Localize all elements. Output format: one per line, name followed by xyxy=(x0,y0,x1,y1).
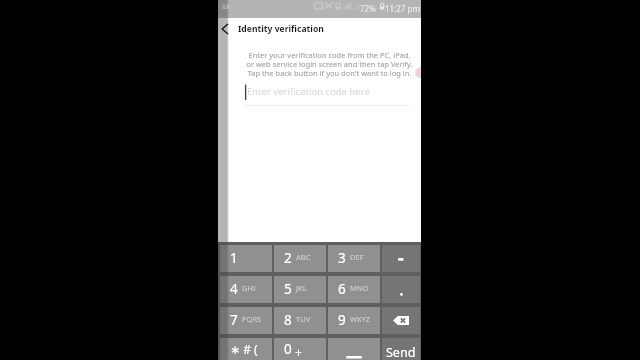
staticText: PQRS xyxy=(242,314,262,324)
staticText: 8 xyxy=(284,311,292,329)
staticText: 72% xyxy=(360,3,376,14)
staticText: + xyxy=(295,344,302,360)
staticText: JKL xyxy=(296,283,307,293)
staticText: Enter your verification code from the PC… xyxy=(238,50,421,78)
staticText: Enter verification code here xyxy=(247,85,370,98)
staticText: ABC xyxy=(296,252,311,262)
staticText: 1 xyxy=(230,249,238,267)
staticText: DEF xyxy=(350,252,364,262)
button[interactable]: 3 xyxy=(328,245,380,272)
staticText: 7 xyxy=(230,311,238,329)
button[interactable]: 0 xyxy=(274,338,326,360)
button[interactable]: 4 xyxy=(220,276,272,303)
staticText: 6 xyxy=(338,280,346,298)
button[interactable]: 6 xyxy=(328,276,380,303)
staticText: ∗ # ( xyxy=(230,341,258,357)
button[interactable]: 9 xyxy=(328,307,380,334)
button[interactable]: 7 xyxy=(220,307,272,334)
staticText: 3 xyxy=(338,249,346,267)
button[interactable]: Delete xyxy=(382,307,420,334)
staticText: Send xyxy=(386,344,416,360)
staticText: WXYZ xyxy=(350,314,371,324)
staticText: 5 xyxy=(284,280,292,298)
staticText: Identity verification xyxy=(238,23,324,35)
staticText: MNO xyxy=(350,283,369,293)
button[interactable] xyxy=(382,245,420,272)
button[interactable] xyxy=(382,276,420,303)
staticText: 0 xyxy=(284,340,292,358)
staticText: 2 xyxy=(284,249,292,267)
button[interactable]: 1 xyxy=(220,245,272,272)
staticText: 4 xyxy=(230,280,238,298)
button[interactable]: Enter verification code here xyxy=(245,87,410,107)
button[interactable]: ∗ # ( xyxy=(220,338,272,360)
staticText: 11:27 pm xyxy=(385,3,420,14)
button[interactable]: 5 xyxy=(274,276,326,303)
staticText: GHI xyxy=(242,283,256,293)
button[interactable]: Send xyxy=(382,338,420,360)
staticText: TUV xyxy=(296,314,311,324)
button[interactable]: Back xyxy=(219,20,233,38)
button[interactable]: 8 xyxy=(274,307,326,334)
staticText: 9 xyxy=(338,311,346,329)
button[interactable]: 2 xyxy=(274,245,326,272)
button[interactable]: Space xyxy=(328,338,380,360)
